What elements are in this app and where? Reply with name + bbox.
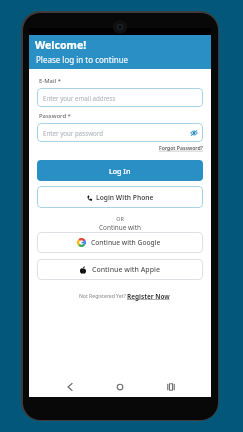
button[interactable]: Back (63, 380, 77, 394)
button[interactable]: Enter your email address (37, 88, 203, 107)
staticText: Please log in to continue (36, 54, 129, 65)
button[interactable]: Enter your password (37, 123, 203, 142)
staticText: Continue with Apple (92, 265, 160, 275)
staticText: Welcome! (35, 38, 87, 52)
button[interactable]: Continue with Apple (37, 259, 203, 280)
button[interactable]: Recent apps (164, 380, 178, 394)
button[interactable]: Continue with Google (37, 232, 203, 253)
button[interactable]: Login With Phone (37, 186, 203, 208)
staticText: Continue with Google (91, 238, 161, 247)
button[interactable]: Log In (37, 160, 203, 181)
staticText: Continue with (99, 223, 141, 232)
staticText: Enter your password (43, 129, 104, 137)
staticText: Enter your email address (43, 94, 116, 102)
staticText: Not Registered Yet? (79, 293, 127, 300)
staticText: OR (116, 215, 124, 222)
staticText: E-Mail * (39, 77, 61, 85)
staticText: Forgot Password? (159, 145, 203, 152)
button[interactable]: Forgot Password? (159, 145, 203, 152)
staticText: Login With Phone (96, 193, 154, 202)
staticText: Password * (39, 112, 71, 120)
button[interactable]: Home (113, 380, 127, 394)
button[interactable]: Show password (190, 129, 198, 137)
staticText: Register Now (127, 292, 170, 301)
button[interactable]: Register Now (127, 292, 170, 301)
staticText: Log In (109, 166, 131, 176)
